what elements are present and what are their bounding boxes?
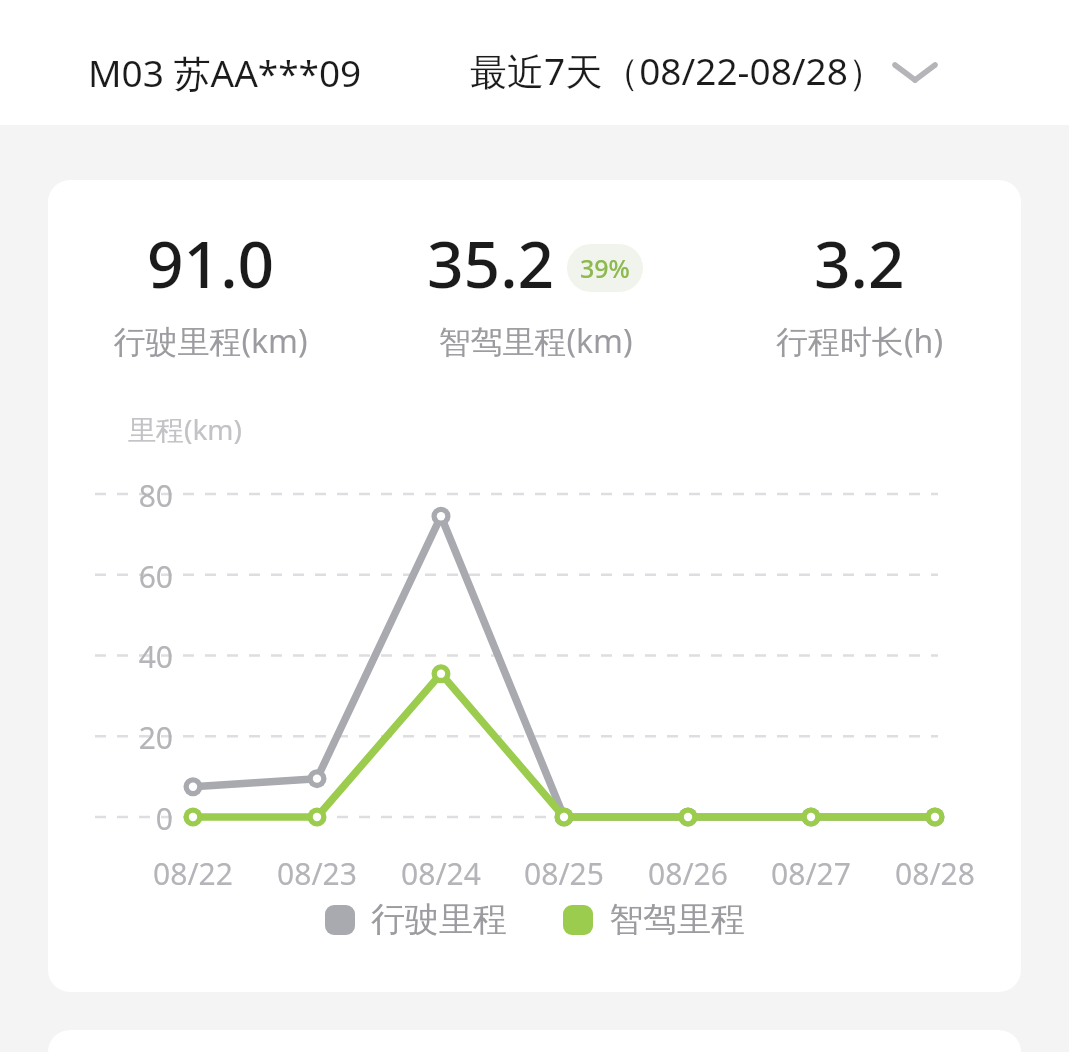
staticText: 08/22 — [131, 853, 255, 894]
staticText: 智驾里程 — [609, 898, 745, 941]
staticText: 里程(km) — [128, 410, 242, 448]
button[interactable]: M03 苏AA***09 — [88, 47, 362, 98]
staticText: 20 — [103, 717, 173, 758]
staticText: 行程时长(h) — [776, 319, 943, 363]
staticText: 0 — [103, 798, 173, 839]
staticText: 08/25 — [502, 853, 626, 894]
button[interactable]: 行驶里程 — [325, 898, 507, 941]
staticText: 08/27 — [749, 853, 873, 894]
button[interactable]: 35.2 — [373, 220, 697, 363]
staticText: 智驾里程(km) — [438, 319, 633, 363]
staticText: 08/28 — [873, 853, 997, 894]
button[interactable]: 最近7天（08/22-08/28） — [470, 45, 937, 96]
staticText: 08/23 — [255, 853, 379, 894]
staticText: 35.2 — [427, 220, 555, 307]
staticText: 最近7天（08/22-08/28） — [470, 45, 885, 96]
button[interactable]: 3.2 — [697, 220, 1021, 363]
staticText: 60 — [103, 556, 173, 597]
staticText: 08/24 — [379, 853, 503, 894]
button[interactable]: 91.0 — [48, 220, 373, 363]
staticText: 行驶里程(km) — [113, 319, 308, 363]
staticText: 39% — [580, 251, 630, 285]
staticText: 3.2 — [814, 220, 905, 307]
button[interactable]: 智驾里程 — [563, 898, 745, 941]
staticText: 80 — [103, 475, 173, 516]
staticText: 行驶里程 — [371, 898, 507, 941]
staticText: 40 — [103, 636, 173, 677]
other: Change date range — [893, 49, 937, 93]
staticText: 08/26 — [626, 853, 750, 894]
staticText: 91.0 — [147, 220, 275, 307]
